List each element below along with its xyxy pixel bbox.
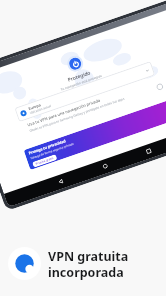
staticText: Usa tu VPN para una navegación privada — [27, 98, 101, 127]
staticText: Ubicación actual — [29, 104, 52, 115]
button[interactable]: Ayuda — [155, 82, 164, 91]
button[interactable]: Europa — [14, 61, 155, 122]
button[interactable]: Protege tu privacidad — [24, 85, 166, 170]
staticText: Obtén tu VPN para tu Samsung Galaxy y pr… — [29, 97, 125, 133]
button[interactable]: Activar VPN — [68, 56, 83, 71]
staticText: Navega de forma segura y privada — [30, 141, 75, 160]
button[interactable]: VPN gratuita incorporada — [8, 247, 129, 280]
staticText: Prueba gratis — [35, 156, 54, 166]
staticText: Europa — [28, 102, 41, 111]
staticText: Protegido — [49, 63, 109, 90]
staticText: VPN gratuita incorporada — [48, 248, 129, 280]
staticText: Tu navegación está protegida — [52, 71, 111, 95]
button[interactable]: Prueba gratis — [32, 154, 57, 168]
staticText: Protege tu privacidad — [28, 138, 66, 155]
